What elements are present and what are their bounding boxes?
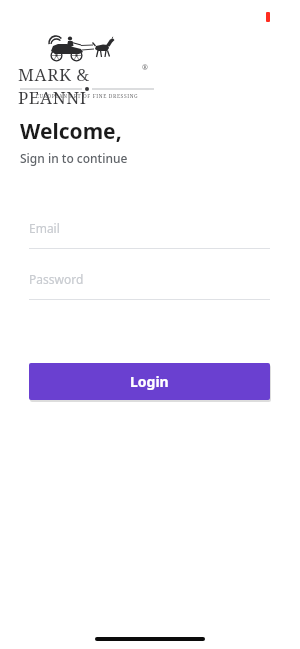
staticText: Email (29, 220, 60, 236)
staticText: MARK & PEANNI (18, 63, 158, 109)
staticText: Sign in to continue (20, 150, 128, 166)
staticText: ® (142, 63, 148, 73)
staticText: EUROPEAN ART OF FINE DRESSING (20, 93, 154, 100)
staticText: Password (29, 271, 84, 287)
button[interactable]: Password (29, 271, 270, 300)
staticText: Login (130, 372, 169, 391)
staticText: Welcome, (20, 117, 122, 146)
button[interactable]: Login (29, 363, 270, 400)
button[interactable]: Email (29, 220, 270, 249)
